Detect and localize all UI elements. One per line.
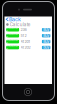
button[interactable]: Measure — [6, 46, 19, 49]
staticText: Measure — [6, 37, 19, 46]
staticText: Measure — [6, 43, 19, 52]
staticText: Measure — [6, 25, 19, 34]
staticText: Buy — [43, 39, 49, 44]
staticText: Buy — [43, 27, 49, 32]
staticText: 512 — [20, 33, 26, 38]
button[interactable]: Buy — [42, 40, 50, 43]
button[interactable]: Measure — [6, 40, 19, 43]
button[interactable]: Measure — [6, 34, 19, 37]
staticText: A1202 — [20, 45, 30, 50]
button[interactable]: Buy — [42, 28, 50, 31]
staticText: A1201 — [20, 39, 30, 44]
staticText: Buy — [43, 45, 49, 50]
button[interactable]: Measure — [6, 28, 19, 32]
staticText: Measure — [6, 31, 19, 40]
staticText: Buy — [43, 33, 49, 38]
staticText: Calculate — [10, 22, 31, 27]
button[interactable]: Back — [4, 16, 52, 22]
button[interactable]: Buy — [42, 34, 50, 37]
staticText: Back — [9, 16, 21, 22]
staticText: 236 — [20, 27, 26, 32]
button[interactable]: Buy — [42, 46, 50, 49]
